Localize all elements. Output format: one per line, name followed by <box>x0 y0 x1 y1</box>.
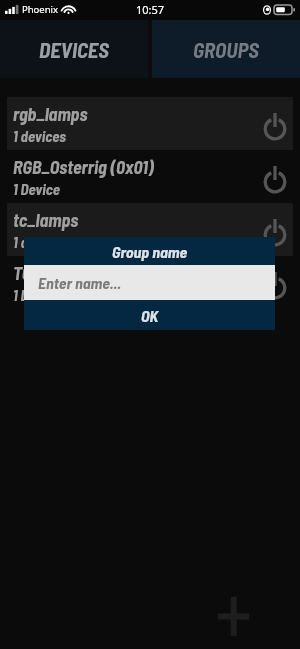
button[interactable]: Add group <box>210 592 258 640</box>
staticText: OK <box>141 306 159 325</box>
button[interactable]: Power toggle <box>249 208 293 252</box>
staticText: tc_lamps <box>13 209 79 231</box>
staticText: 1 devices <box>13 233 66 251</box>
button[interactable]: RGB_Osterrig (0x01) <box>7 150 293 203</box>
button[interactable]: Power toggle <box>249 155 293 199</box>
staticText: 10:57 <box>136 2 165 17</box>
button[interactable]: TC_Osterrig (0x02) <box>7 256 293 309</box>
button[interactable]: GROUPS <box>152 20 300 78</box>
staticText: GROUPS <box>193 37 259 62</box>
staticText: rgb_lamps <box>13 103 88 125</box>
button[interactable]: DEVICES <box>0 20 148 78</box>
staticText: DEVICES <box>39 37 109 62</box>
button[interactable]: Power toggle <box>249 261 293 305</box>
staticText: Phoenix <box>22 3 59 16</box>
staticText: RGB_Osterrig (0x01) <box>13 156 154 178</box>
staticText: Enter name... <box>38 273 122 292</box>
staticText: Group name <box>112 242 188 261</box>
staticText: 1 devices <box>13 127 66 145</box>
staticText: 1 Device <box>13 286 60 304</box>
button[interactable]: Power toggle <box>249 102 293 146</box>
button[interactable]: OK <box>24 300 275 330</box>
staticText: 1 Device <box>13 180 60 198</box>
button[interactable]: rgb_lamps <box>7 97 293 150</box>
button[interactable]: tc_lamps <box>7 203 293 256</box>
staticText: TC_Osterrig (0x02) <box>13 262 147 284</box>
